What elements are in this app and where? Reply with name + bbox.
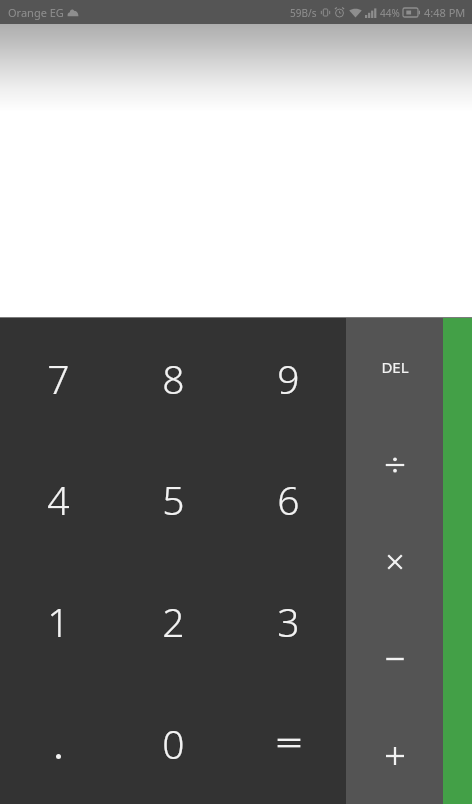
button[interactable]: 9 <box>231 318 346 439</box>
button[interactable]: Multiply <box>346 513 443 610</box>
staticText: 6 <box>277 473 300 526</box>
staticText: 4:48 PM <box>424 5 466 20</box>
button[interactable] <box>0 682 116 804</box>
button[interactable]: 3 <box>231 560 346 682</box>
staticText: Orange EG <box>8 5 64 20</box>
staticText: 0 <box>162 717 185 770</box>
button[interactable]: 4 <box>0 439 116 560</box>
button[interactable]: Delete <box>346 318 443 416</box>
other: Plus <box>384 745 406 767</box>
staticText: DEL <box>381 357 409 377</box>
staticText: 8 <box>162 352 185 405</box>
other: Multiply <box>385 552 405 572</box>
button[interactable]: Plus <box>346 707 443 804</box>
staticText: 2 <box>162 595 185 648</box>
staticText: 1 <box>47 595 70 648</box>
button[interactable]: 1 <box>0 560 116 682</box>
button[interactable]: Equals <box>231 682 346 804</box>
button[interactable]: 6 <box>231 439 346 560</box>
other: Divide <box>384 454 406 476</box>
other: Equals <box>276 735 302 751</box>
staticText: 9 <box>277 352 300 405</box>
button[interactable]: 2 <box>116 560 231 682</box>
other: Delete <box>381 357 409 377</box>
button[interactable]: 0 <box>116 682 231 804</box>
staticText: 5 <box>162 473 185 526</box>
button[interactable]: 8 <box>116 318 231 439</box>
other: Minus <box>384 648 406 670</box>
button[interactable]: Divide <box>346 416 443 513</box>
staticText: 7 <box>47 352 70 405</box>
staticText: 4 <box>47 473 70 526</box>
button[interactable]: 5 <box>116 439 231 560</box>
button[interactable]: 7 <box>0 318 116 439</box>
staticText: 3 <box>277 595 300 648</box>
staticText: 44% <box>380 6 400 20</box>
button[interactable]: Minus <box>346 610 443 707</box>
staticText: 59B/s <box>290 6 317 20</box>
